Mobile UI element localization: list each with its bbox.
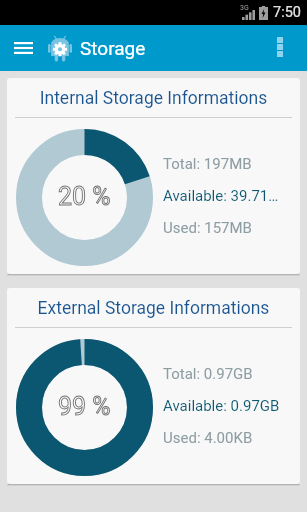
staticText: Available: 0.97GB — [163, 397, 280, 415]
staticText: Total: 197MB — [163, 155, 252, 173]
staticText: 7:50 — [273, 4, 301, 21]
staticText: Storage — [80, 37, 146, 59]
button[interactable]: More options — [271, 25, 307, 71]
staticText: 20 % — [58, 182, 111, 211]
staticText: Total: 0.97GB — [163, 365, 253, 383]
button[interactable]: Internal Storage Informations — [7, 78, 300, 274]
staticText: Used: 4.00KB — [163, 429, 253, 447]
staticText: 99 % — [58, 392, 111, 421]
staticText: Used: 157MB — [163, 219, 252, 237]
button[interactable]: Open navigation drawer — [8, 28, 39, 68]
button[interactable]: External Storage Informations — [7, 288, 300, 484]
staticText: External Storage Informations — [7, 298, 300, 319]
staticText: 3G — [240, 4, 249, 12]
staticText: Available: 39.71… — [163, 187, 279, 205]
staticText: Internal Storage Informations — [7, 88, 300, 109]
